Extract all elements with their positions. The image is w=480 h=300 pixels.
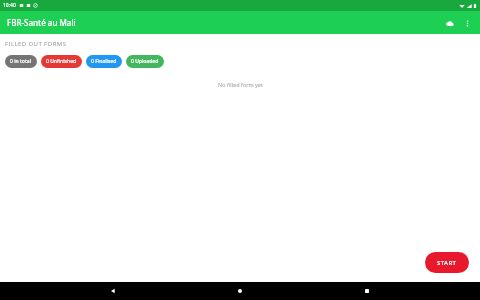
- button[interactable]: 0 Finalised: [86, 55, 122, 68]
- button[interactable]: More options: [458, 14, 476, 32]
- button[interactable]: Back: [99, 282, 127, 300]
- button[interactable]: Upload forms: [440, 14, 458, 32]
- staticText: 10:40: [3, 2, 16, 9]
- staticText: 0 in total: [10, 58, 32, 65]
- staticText: No filled form yet: [218, 81, 263, 88]
- button[interactable]: 0 Uploaded: [126, 55, 164, 68]
- staticText: 0 Uploaded: [131, 58, 159, 65]
- staticText: FBR-Santé au Mali: [7, 17, 76, 28]
- staticText: 0 Finalised: [91, 58, 117, 65]
- button[interactable]: 0 in total: [5, 55, 37, 68]
- staticText: START: [437, 259, 457, 267]
- staticText: FILLED OUT FORMS: [5, 40, 67, 48]
- button[interactable]: Recent apps: [353, 282, 381, 300]
- staticText: 0 Unfinished: [46, 58, 77, 65]
- button[interactable]: START: [425, 252, 469, 273]
- button[interactable]: 0 Unfinished: [41, 55, 82, 68]
- button[interactable]: Home: [226, 282, 254, 300]
